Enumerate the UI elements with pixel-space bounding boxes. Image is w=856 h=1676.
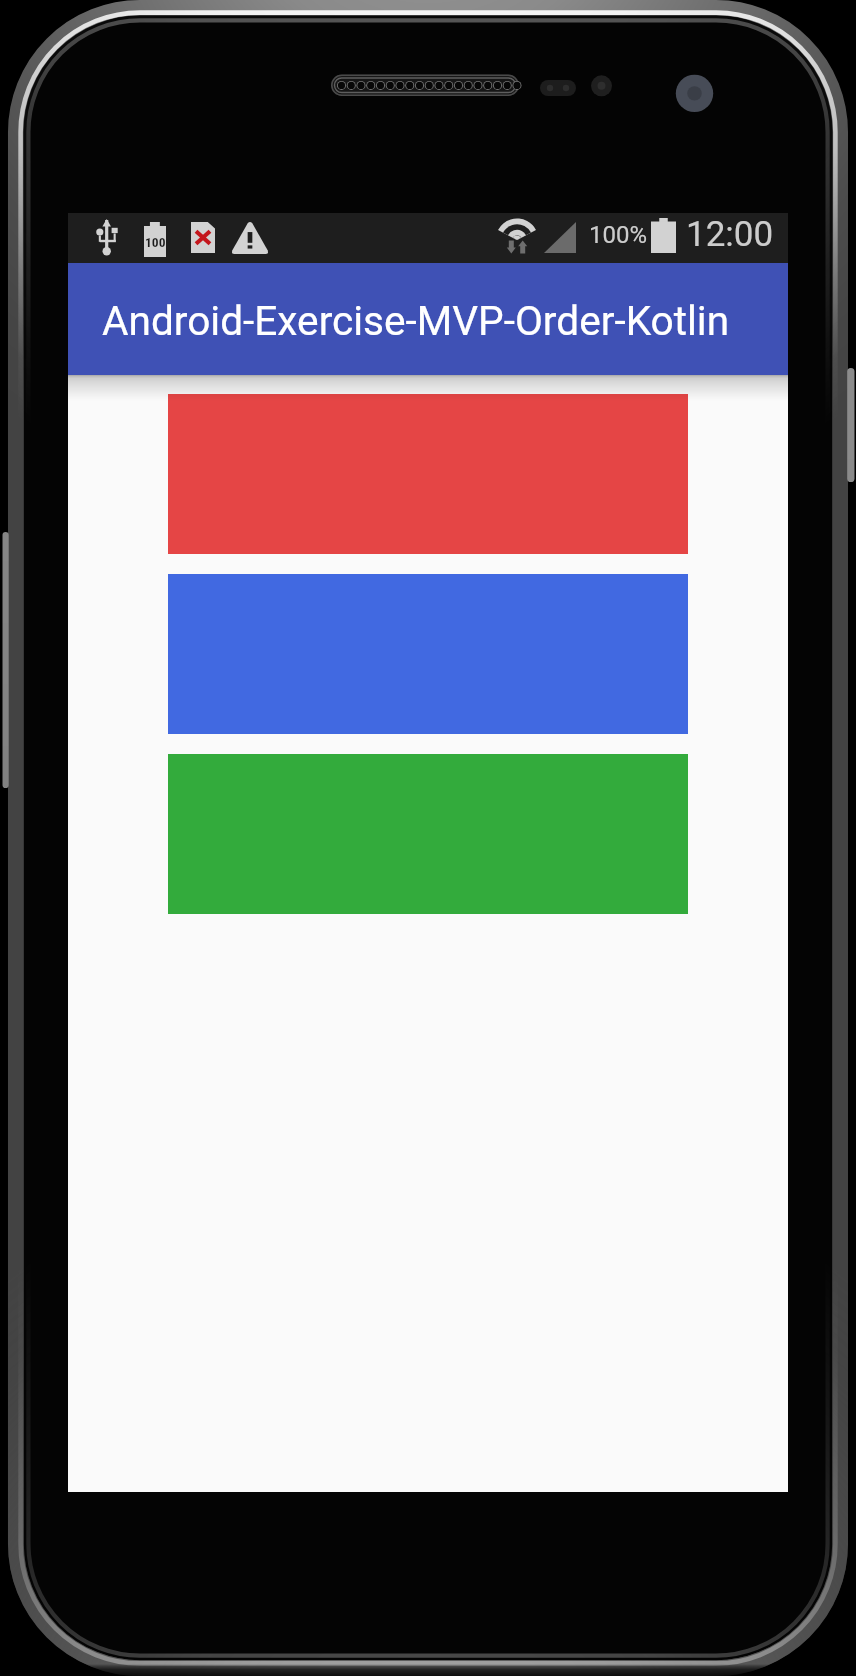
staticText: 100	[145, 234, 166, 250]
staticText: Android-Exercise-MVP-Order-Kotlin	[102, 297, 730, 345]
staticText: 12:00	[686, 214, 774, 255]
staticText: 100%	[589, 221, 648, 249]
